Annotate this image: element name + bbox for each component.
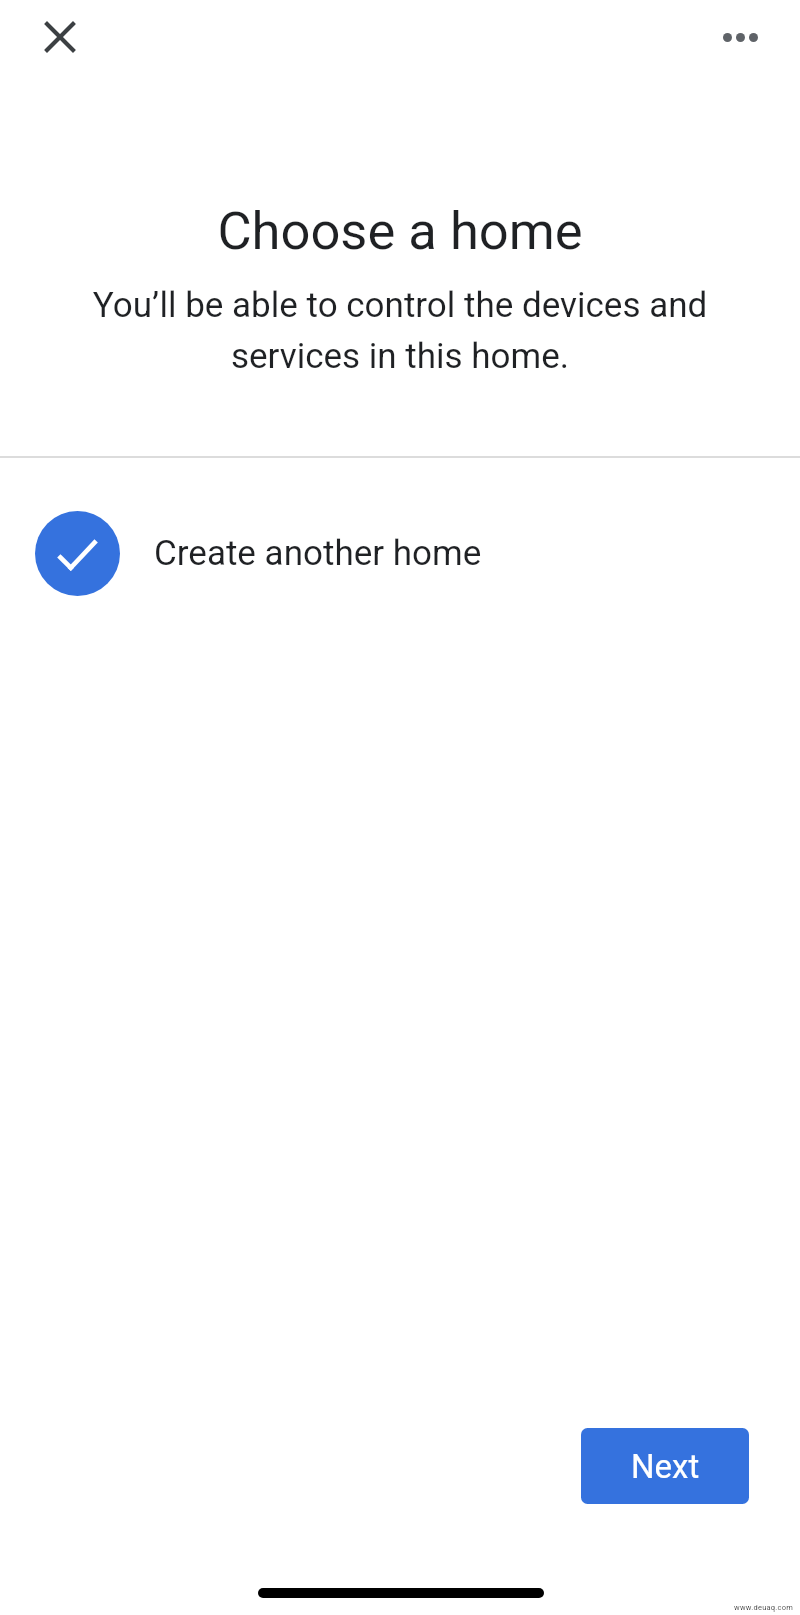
staticText: You’ll be able to control the devices an… xyxy=(80,285,720,377)
button[interactable]: Create another home xyxy=(0,481,800,625)
button[interactable]: Close xyxy=(24,1,96,73)
staticText: Choose a home xyxy=(0,200,800,262)
staticText: Create another home xyxy=(154,533,482,574)
staticText: Next xyxy=(631,1447,700,1486)
button[interactable]: Next xyxy=(581,1428,749,1504)
staticText: www.deuaq.com xyxy=(734,1603,794,1612)
button[interactable]: More options xyxy=(704,1,776,73)
